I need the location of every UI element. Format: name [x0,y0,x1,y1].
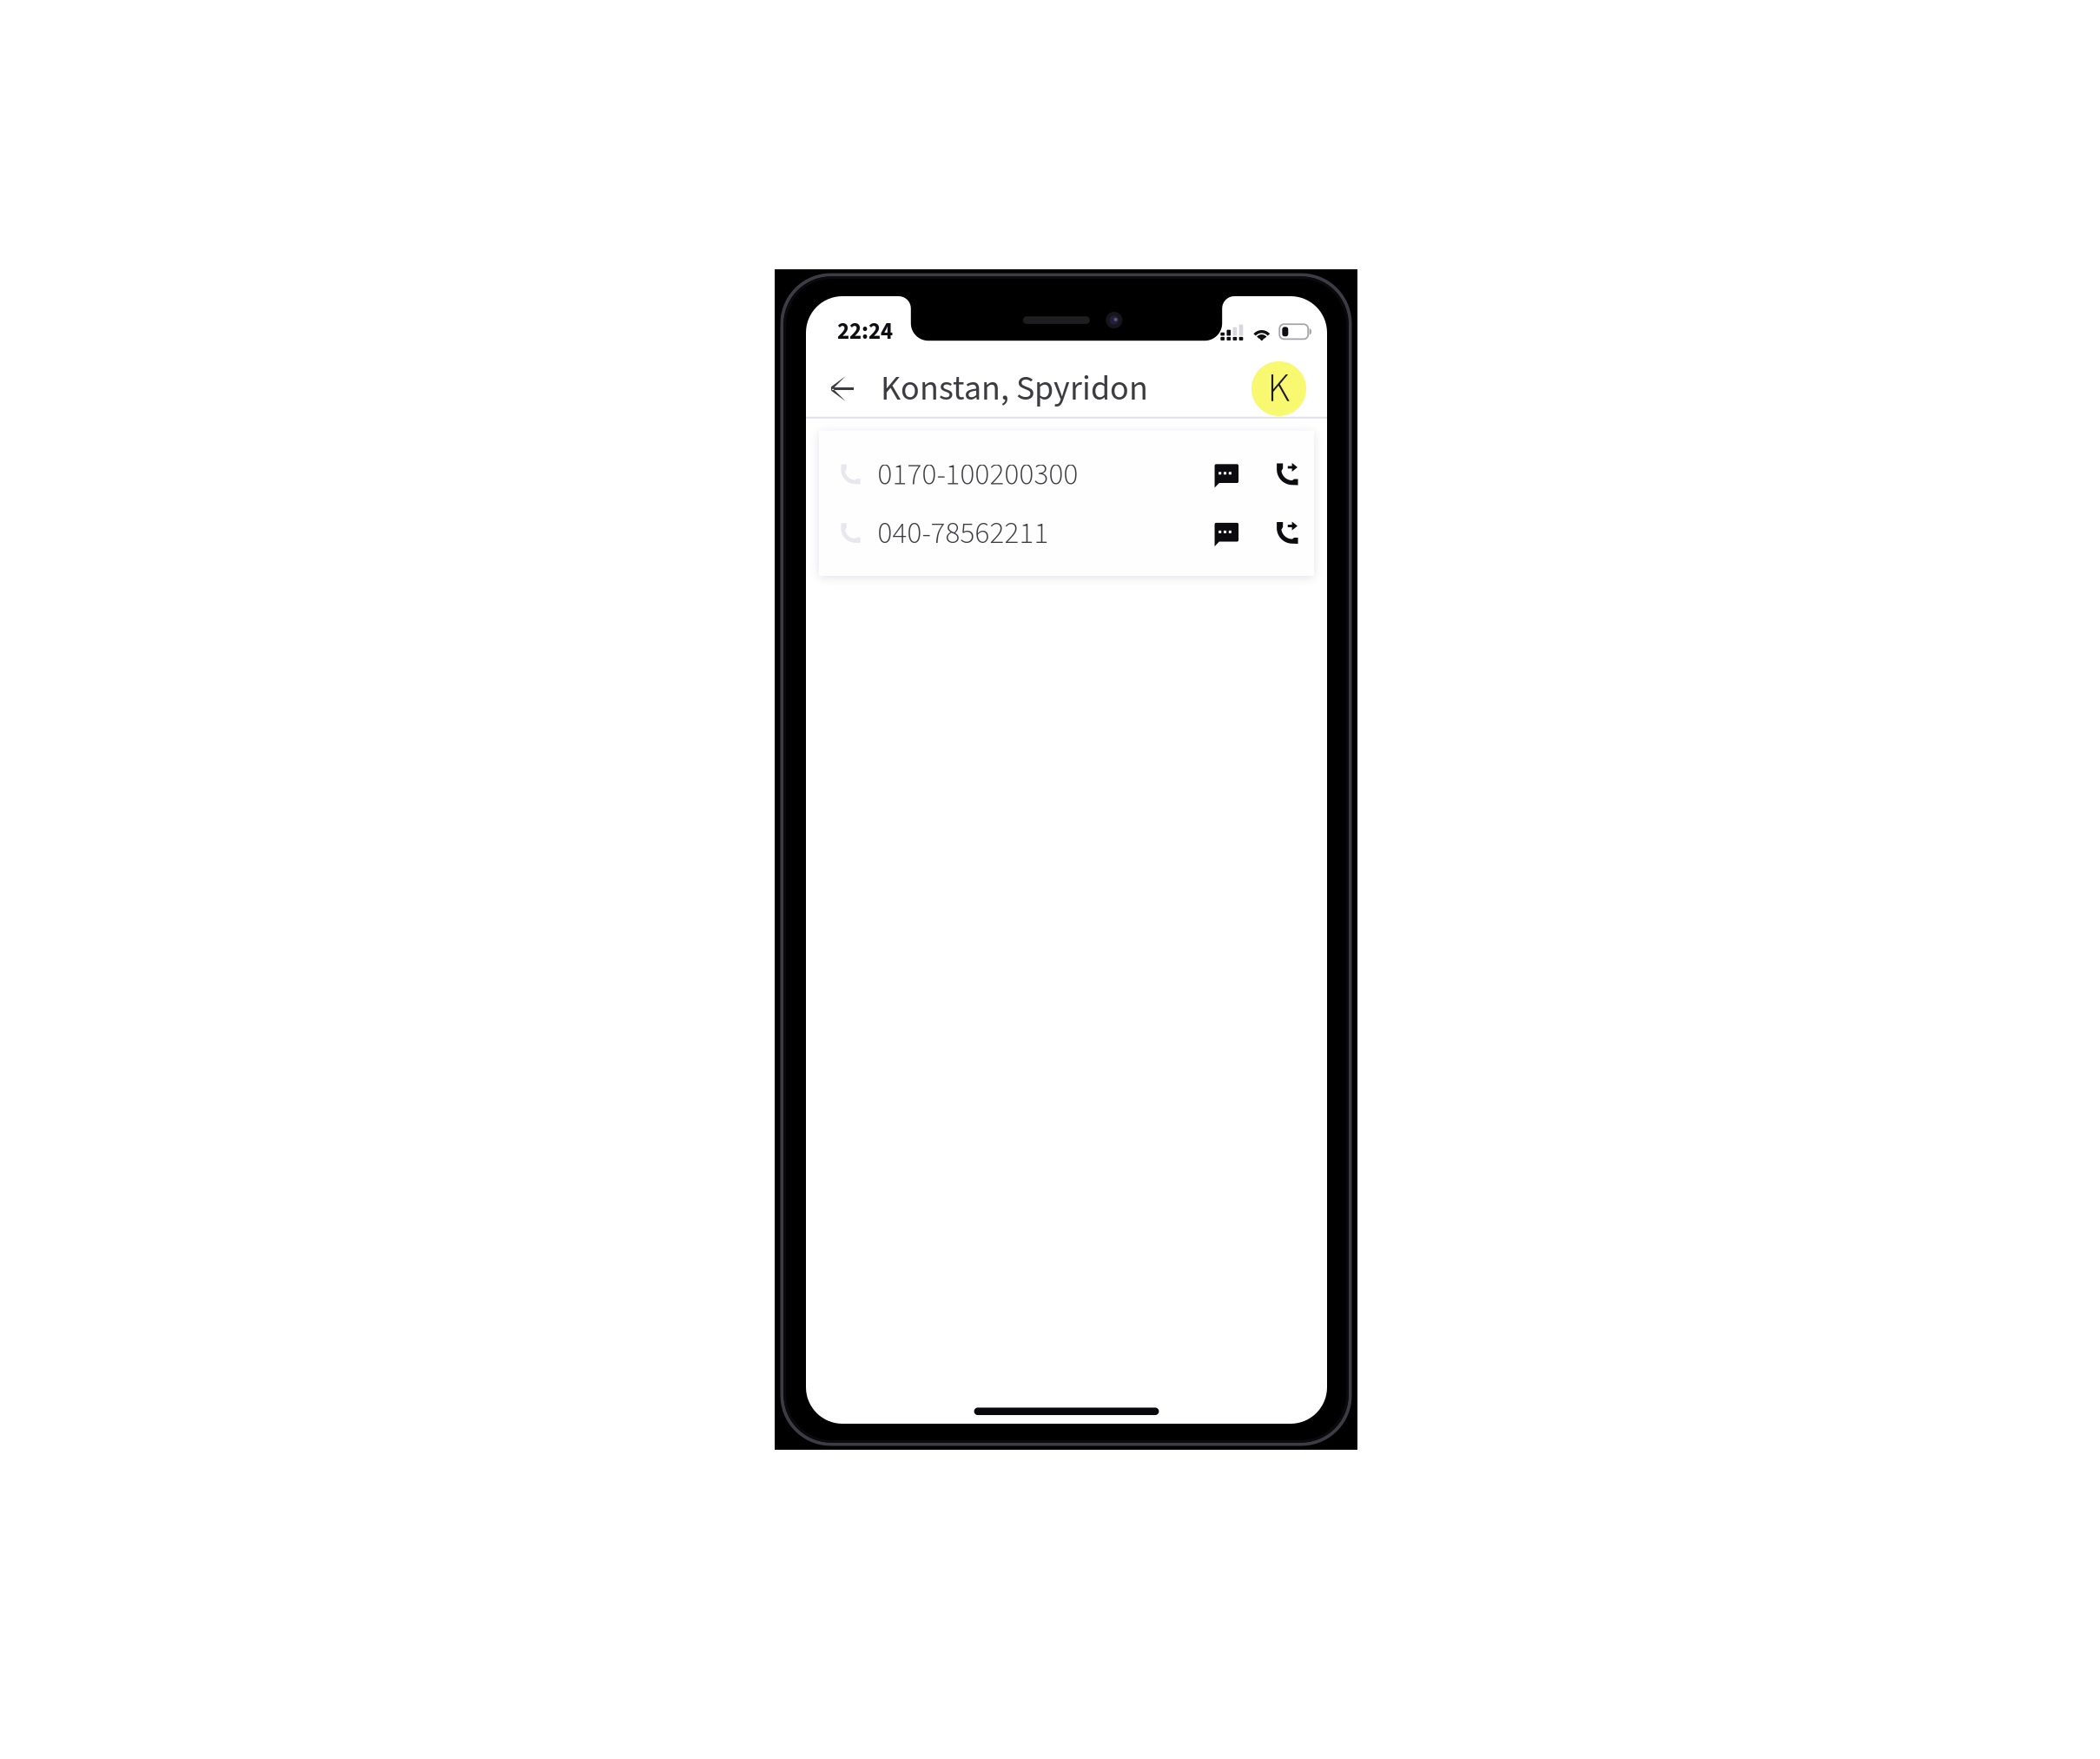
button[interactable]: Send message to 040-78562211 [1208,515,1245,552]
button[interactable]: Back [821,367,864,410]
button[interactable]: Forward call to 040-78562211 [1268,515,1305,552]
button[interactable]: 040-78562211 [819,504,1314,563]
staticText: K [1268,360,1290,417]
staticText: Konstan, Spyridon [881,364,1148,413]
staticText: 040-78562211 [878,512,1049,555]
button[interactable]: Contact avatar K [1251,361,1306,416]
button[interactable]: Forward call to 0170-100200300 [1268,456,1305,493]
button[interactable]: 0170-100200300 [819,445,1314,504]
staticText: 22:24 [837,315,893,348]
staticText: 0170-100200300 [878,453,1078,496]
button[interactable]: Send message to 0170-100200300 [1208,456,1245,493]
